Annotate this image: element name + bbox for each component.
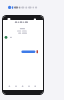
button[interactable]: Tab 1 [3,84,11,89]
button[interactable]: Tab 2 [11,84,19,89]
button[interactable]: Tab 5 [35,84,43,89]
button[interactable]: Tab 4 [27,84,35,89]
button[interactable]: Tab 3 [19,84,27,89]
